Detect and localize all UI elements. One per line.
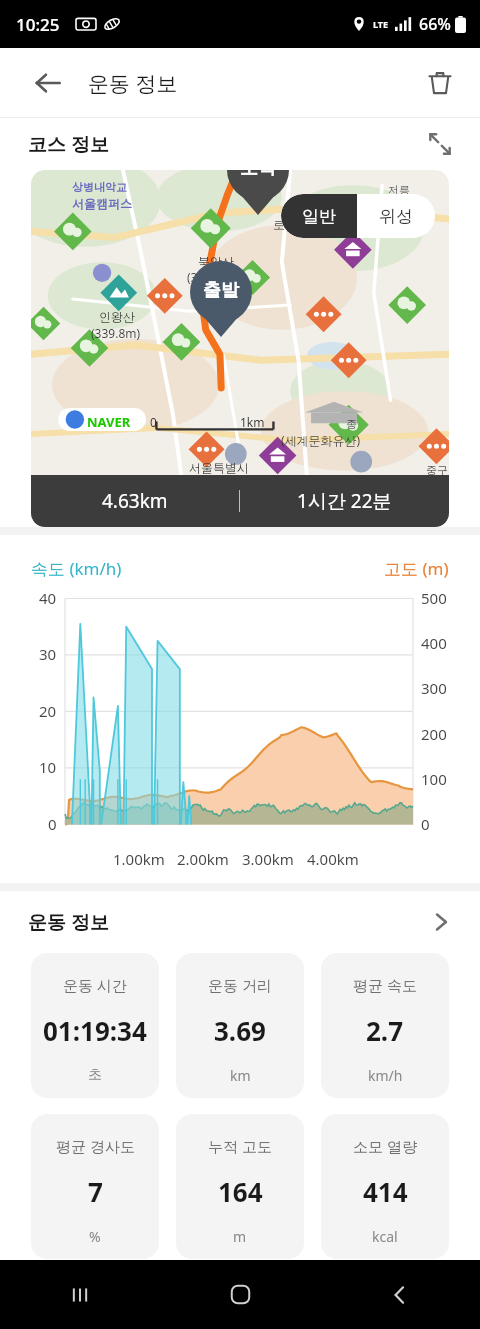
staticText: m (233, 1227, 247, 1246)
staticText: 2.7 (366, 1013, 404, 1048)
button[interactable]: 누적 고도 (176, 1114, 304, 1259)
button[interactable]: 상병내악교 (31, 170, 449, 527)
staticText: 출발 (203, 279, 239, 302)
button[interactable]: Recents (0, 1260, 160, 1329)
staticText: 66% (419, 13, 451, 35)
staticText: 소모 열량 (353, 1136, 417, 1156)
staticText: 일반 (302, 206, 336, 227)
staticText: 400 (421, 633, 447, 653)
staticText: 100 (421, 769, 447, 789)
staticText: 도착 (240, 170, 276, 180)
staticText: 북악산 (198, 254, 234, 269)
staticText: 종 (346, 417, 357, 431)
staticText: 서울특별시 (189, 460, 249, 475)
staticText: 414 (363, 1174, 408, 1209)
button[interactable]: Back (320, 1260, 480, 1329)
button[interactable]: 운동 정보 (0, 891, 480, 953)
button[interactable]: Delete (414, 57, 466, 109)
staticText: 인왕산 (99, 309, 135, 324)
button[interactable]: Expand map (418, 122, 462, 166)
button[interactable]: 소모 열량 (321, 1114, 449, 1259)
staticText: 3.69 (214, 1013, 266, 1048)
button[interactable]: 평균 경사도 (31, 1114, 159, 1259)
staticText: 운동 정보 (88, 69, 178, 98)
staticText: NAVER (87, 413, 131, 431)
button[interactable]: Home (160, 1260, 320, 1329)
staticText: (339.8m) (91, 325, 141, 341)
staticText: (세계문화유산) (281, 432, 361, 448)
button[interactable]: 운동 거리 (176, 953, 304, 1098)
staticText: 4.63km (102, 488, 168, 514)
staticText: 누적 고도 (208, 1136, 272, 1156)
staticText: 평균 경사도 (56, 1136, 135, 1156)
staticText: 1.00km (113, 849, 165, 869)
staticText: 평균 속도 (353, 975, 417, 995)
staticText: 운동 거리 (208, 975, 272, 995)
staticText: 초 (88, 1066, 102, 1084)
staticText: 1km (240, 414, 265, 430)
staticText: (342.6m) (187, 269, 237, 285)
staticText: 운동 시간 (63, 975, 127, 995)
staticText: km/h (368, 1066, 403, 1085)
staticText: 4.00km (307, 849, 359, 869)
staticText: 7 (88, 1174, 103, 1209)
staticText: 20 (39, 701, 57, 721)
staticText: 저릉 (388, 183, 410, 197)
staticText: 300 (421, 678, 447, 698)
staticText: 로구 (273, 217, 297, 232)
staticText: 코스 정보 (28, 131, 109, 157)
staticText: 0 (421, 814, 430, 834)
staticText: km (230, 1066, 251, 1085)
button[interactable]: 평균 속도 (321, 953, 449, 1098)
staticText: 고도 (m) (384, 557, 449, 580)
staticText: 상병내악교 (72, 180, 127, 194)
staticText: 운동 정보 (28, 909, 109, 935)
button[interactable]: Back (22, 57, 74, 109)
staticText: 40 (39, 588, 57, 608)
staticText: 200 (421, 724, 447, 744)
staticText: 서울캠퍼스 (72, 196, 132, 211)
staticText: 500 (421, 588, 447, 608)
staticText: 10 (39, 757, 57, 777)
staticText: 1시간 22분 (297, 488, 392, 514)
staticText: 01:19:34 (43, 1013, 147, 1048)
staticText: 10:25 (16, 13, 60, 36)
button[interactable]: 일반 (281, 194, 357, 238)
staticText: 3.00km (242, 849, 294, 869)
staticText: 속도 (km/h) (31, 557, 122, 580)
staticText: 2.00km (177, 849, 229, 869)
staticText: 0 (150, 414, 157, 430)
staticText: 위성 (379, 206, 413, 227)
button[interactable]: 운동 시간 (31, 953, 159, 1098)
button[interactable]: 위성 (357, 194, 435, 238)
staticText: 30 (39, 644, 57, 664)
staticText: 164 (218, 1174, 263, 1209)
staticText: 중구 (426, 463, 448, 477)
staticText: LTE (373, 18, 389, 30)
staticText: 0 (48, 814, 57, 834)
staticText: % (89, 1227, 101, 1246)
staticText: kcal (372, 1227, 398, 1246)
